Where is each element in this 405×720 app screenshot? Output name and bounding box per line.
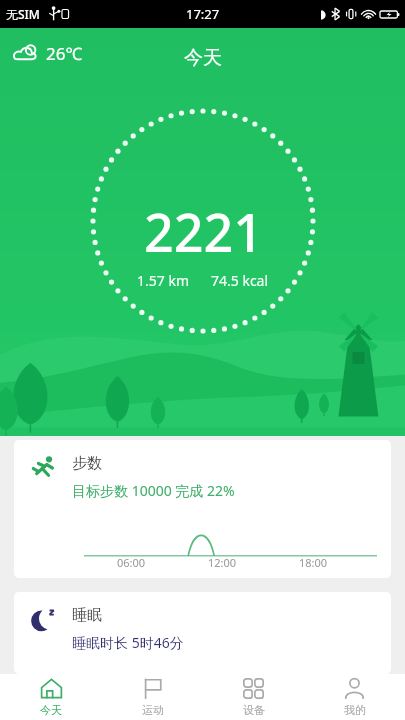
staticText: 步数 bbox=[72, 454, 102, 473]
staticText: 06:00 bbox=[117, 555, 146, 570]
staticText: 2221 bbox=[144, 196, 263, 267]
button[interactable]: 运动 bbox=[102, 674, 203, 720]
staticText: 12:00 bbox=[208, 555, 237, 570]
staticText: 我的 bbox=[344, 703, 366, 717]
button[interactable]: Weather bbox=[12, 42, 83, 65]
button[interactable]: 设备 bbox=[203, 674, 304, 720]
staticText: 18:00 bbox=[299, 555, 328, 570]
staticText: 17:27 bbox=[186, 5, 220, 23]
staticText: 74.5 kcal bbox=[211, 271, 269, 290]
staticText: 睡眠时长 5时46分 bbox=[72, 633, 184, 652]
button[interactable]: Sleep bbox=[14, 592, 391, 674]
staticText: 运动 bbox=[142, 703, 164, 717]
other: Sleep bbox=[30, 606, 58, 634]
staticText: 今天 bbox=[40, 703, 62, 717]
staticText: 无SIM bbox=[6, 6, 40, 22]
staticText: 目标步数 10000 完成 22% bbox=[72, 481, 235, 500]
button[interactable]: Steps bbox=[14, 440, 391, 578]
staticText: 设备 bbox=[243, 703, 265, 717]
button[interactable]: 今天 bbox=[184, 46, 222, 70]
staticText: 睡眠 bbox=[72, 606, 102, 625]
button[interactable]: 今天 bbox=[0, 674, 102, 720]
staticText: 26℃ bbox=[46, 42, 83, 65]
other: Weather bbox=[12, 43, 42, 65]
staticText: 1.57 km bbox=[137, 271, 189, 290]
button[interactable]: 我的 bbox=[304, 674, 405, 720]
other: Steps bbox=[30, 454, 58, 482]
